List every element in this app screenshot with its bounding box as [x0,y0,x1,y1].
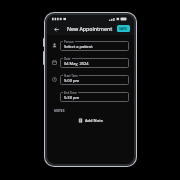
staticText: 5:30 pm [64,95,80,100]
staticText: 04 May, 2024 [64,61,89,66]
button[interactable]: Person [60,40,129,51]
button[interactable]: Add Note [74,116,107,125]
staticText: Select a patient [64,44,93,49]
staticText: End Time [64,91,77,95]
staticText: Start Time [64,74,78,78]
staticText: SAVE [119,26,128,31]
button[interactable]: Back [51,24,61,34]
staticText: 5:00 pm [64,78,80,83]
staticText: New Appointment [67,25,113,32]
staticText: Date [64,57,71,61]
staticText: Add Note [85,118,103,123]
button[interactable]: Date [60,57,129,68]
button[interactable]: End Time [60,91,129,102]
button[interactable]: SAVE [117,25,130,32]
button[interactable]: Start Time [60,74,129,85]
staticText: NOTES [54,109,65,113]
staticText: Person [64,40,74,44]
